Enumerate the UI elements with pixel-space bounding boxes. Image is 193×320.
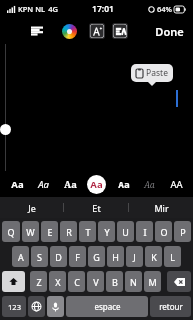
button[interactable]: M [144,271,161,292]
staticText: A [18,251,24,263]
button[interactable]: retour [150,296,191,317]
staticText: H [112,251,119,263]
button[interactable]: Z [30,271,47,292]
button[interactable]: P [174,221,191,242]
staticText: M [148,276,157,288]
button[interactable]: N [125,271,142,292]
staticText: P [180,226,186,238]
staticText: 17:01 [92,3,114,15]
button[interactable]: W [22,221,39,242]
staticText: T [85,226,91,238]
staticText: Z [36,276,42,288]
button[interactable]: Je [0,197,63,218]
staticText: B [112,276,118,288]
button[interactable]: Color [58,20,80,42]
staticText: Y [104,226,110,238]
button[interactable]: J [126,246,143,267]
button[interactable]: A [12,246,29,267]
button[interactable]: E [41,221,58,242]
staticText: I [143,226,147,238]
button[interactable]: Aa [87,175,106,194]
staticText: W [26,226,35,238]
button[interactable]: O [155,221,172,242]
button[interactable]: Paste [131,64,173,82]
button[interactable]: U [117,221,134,242]
button[interactable]: Backspace [167,271,191,292]
staticText: espace [94,301,121,312]
staticText: J [133,251,136,263]
staticText: Aa [38,178,49,191]
staticText: 64% [157,4,172,14]
button[interactable]: C [68,271,85,292]
button[interactable]: AA [167,175,186,194]
button[interactable]: V [87,271,104,292]
staticText: Mir [154,202,169,214]
staticText: F [75,251,80,263]
staticText: Done [155,24,184,39]
staticText: 4G [48,4,58,14]
button[interactable]: Text style [112,23,128,39]
staticText: Je [28,202,36,214]
staticText: Q [7,226,15,238]
staticText: C [74,276,80,288]
staticText: Aa [64,178,77,191]
button[interactable]: Dictate [47,296,64,317]
staticText: AA [170,178,183,191]
button[interactable]: 123 [2,296,26,317]
staticText: O [160,226,168,238]
button[interactable]: Shift [2,271,25,292]
button[interactable]: Aa [61,175,80,194]
button[interactable]: X [49,271,66,292]
button[interactable]: Switch language [28,296,45,317]
button[interactable]: Et [64,197,128,218]
button[interactable]: I [136,221,153,242]
button[interactable]: D [50,246,67,267]
staticText: Aa [144,179,155,191]
staticText: Aa [118,178,130,191]
button[interactable]: Aa [8,175,27,194]
button[interactable]: Text format [89,23,105,39]
staticText: Aa [11,178,24,191]
staticText: S [37,251,42,263]
button[interactable]: Aa [34,175,53,194]
staticText: N [130,276,137,288]
staticText: G [93,251,100,263]
staticText: Aa [90,178,103,191]
button[interactable]: T [79,221,96,242]
button[interactable]: H [107,246,124,267]
staticText: Paste [146,67,168,79]
button[interactable]: Alignment [26,20,48,42]
staticText: R [66,226,72,238]
button[interactable]: Y [98,221,115,242]
staticText: V [93,276,99,288]
staticText: Et [92,202,101,214]
staticText: retour [159,301,183,312]
staticText: 123 [8,302,21,312]
button[interactable]: R [60,221,77,242]
button[interactable]: K [145,246,162,267]
staticText: D [55,251,62,263]
staticText: U [122,226,129,238]
button[interactable]: Aa [114,175,133,194]
button[interactable]: Done [155,24,184,39]
button[interactable]: espace [66,296,148,317]
button[interactable]: L [164,246,181,267]
button[interactable]: G [88,246,105,267]
button[interactable]: Mir [129,197,193,218]
button[interactable]: B [106,271,123,292]
staticText: X [55,276,61,288]
button[interactable]: F [69,246,86,267]
button[interactable]: Q [2,221,20,242]
button[interactable]: Handle [0,124,11,135]
button[interactable]: S [31,246,48,267]
staticText: E [47,226,53,238]
staticText: L [170,251,175,263]
button[interactable]: Aa [140,175,159,194]
staticText: KPN NL [18,4,45,14]
staticText: K [151,251,157,263]
